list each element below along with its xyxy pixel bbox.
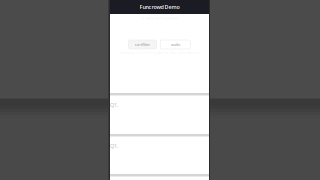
staticText: Funcrowd Demo	[139, 3, 179, 11]
button[interactable]: Q1.	[110, 93, 209, 134]
staticText: audio	[171, 42, 180, 47]
staticText: sort/filter	[134, 42, 150, 47]
button[interactable]: sort/filter	[128, 40, 156, 49]
staticText: Q1.	[110, 101, 118, 109]
button[interactable]: Q1.	[110, 134, 209, 175]
staticText: Q1.	[110, 142, 118, 150]
button[interactable]: audio	[160, 40, 190, 49]
button[interactable]: Q1.	[110, 174, 209, 180]
